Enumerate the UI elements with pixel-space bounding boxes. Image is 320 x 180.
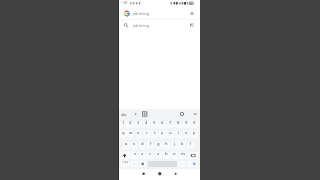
staticText: p bbox=[193, 131, 196, 136]
button[interactable] bbox=[188, 152, 198, 159]
staticText: y bbox=[161, 131, 164, 136]
staticText: m bbox=[181, 152, 185, 157]
staticText: i bbox=[178, 131, 180, 136]
staticText: l bbox=[190, 142, 192, 147]
staticText: 0 bbox=[193, 121, 196, 126]
button[interactable] bbox=[139, 161, 146, 167]
button[interactable]: abc bbox=[121, 110, 133, 118]
button[interactable]: job hiring bbox=[133, 9, 193, 18]
staticText: b bbox=[165, 152, 168, 157]
staticText: r bbox=[146, 131, 148, 136]
staticText: j bbox=[174, 142, 176, 147]
button[interactable]: z bbox=[131, 152, 138, 159]
staticText: o bbox=[185, 131, 188, 136]
staticText: 8 bbox=[177, 121, 180, 126]
staticText: , bbox=[134, 161, 136, 165]
staticText: x bbox=[141, 152, 144, 157]
button[interactable]: a bbox=[123, 142, 130, 149]
staticText: q bbox=[122, 131, 125, 136]
staticText: k bbox=[181, 142, 184, 147]
button[interactable]: r bbox=[143, 131, 150, 138]
button[interactable]: k bbox=[179, 142, 186, 149]
staticText: w bbox=[129, 131, 133, 136]
staticText: . bbox=[181, 161, 183, 165]
button[interactable]: 2 bbox=[127, 121, 134, 128]
button[interactable]: n bbox=[171, 152, 178, 159]
button[interactable]: b bbox=[163, 152, 170, 159]
staticText: d bbox=[141, 142, 144, 147]
staticText: 1:49 bbox=[121, 1, 128, 5]
button[interactable]: d bbox=[139, 142, 146, 149]
staticText: t bbox=[154, 131, 156, 136]
staticText: 9 bbox=[185, 121, 188, 126]
staticText: ?123 bbox=[122, 161, 128, 164]
button[interactable] bbox=[120, 152, 130, 159]
staticText: 5 bbox=[153, 121, 156, 126]
button[interactable]: u bbox=[167, 131, 174, 138]
button[interactable]: l bbox=[187, 142, 194, 149]
button[interactable]: , bbox=[131, 161, 138, 167]
staticText: f bbox=[150, 142, 152, 147]
button[interactable]: m bbox=[179, 152, 186, 159]
button[interactable]: c bbox=[147, 152, 154, 159]
staticText: 4 bbox=[145, 121, 148, 126]
button[interactable]: w bbox=[127, 131, 134, 138]
button[interactable]: job hiring bbox=[133, 21, 193, 30]
button[interactable]: p bbox=[191, 131, 198, 138]
button[interactable]: f bbox=[147, 142, 154, 149]
staticText: s bbox=[133, 142, 136, 147]
button[interactable]: 7 bbox=[167, 121, 174, 128]
staticText: 6 bbox=[161, 121, 164, 126]
staticText: abc bbox=[121, 112, 127, 117]
button[interactable]: 0 bbox=[191, 121, 198, 128]
staticText: a bbox=[125, 142, 128, 147]
button[interactable]: 8 bbox=[175, 121, 182, 128]
button[interactable]: 3 bbox=[135, 121, 142, 128]
staticText: 2 bbox=[129, 121, 132, 126]
button[interactable]: 4 bbox=[143, 121, 150, 128]
staticText: e bbox=[137, 131, 140, 136]
staticText: u bbox=[169, 131, 172, 136]
button[interactable]: y bbox=[159, 131, 166, 138]
button[interactable]: i bbox=[175, 131, 182, 138]
button[interactable]: 1 bbox=[120, 121, 127, 128]
button[interactable]: 5 bbox=[151, 121, 158, 128]
button[interactable]: t bbox=[151, 131, 158, 138]
button[interactable]: o bbox=[183, 131, 190, 138]
button[interactable]: g bbox=[155, 142, 162, 149]
staticText: n bbox=[173, 152, 176, 157]
staticText: v bbox=[157, 152, 160, 157]
button[interactable]: q bbox=[120, 131, 127, 138]
button[interactable]: s bbox=[131, 142, 138, 149]
button[interactable]: e bbox=[135, 131, 142, 138]
staticText: job hiring bbox=[133, 23, 149, 28]
staticText: c bbox=[149, 152, 152, 157]
button[interactable]: . bbox=[178, 161, 185, 167]
button[interactable]: v bbox=[155, 152, 162, 159]
staticText: z bbox=[134, 152, 136, 157]
button[interactable]: h bbox=[163, 142, 170, 149]
button[interactable] bbox=[187, 161, 199, 167]
staticText: h bbox=[165, 142, 168, 147]
button[interactable]: 6 bbox=[159, 121, 166, 128]
staticText: g bbox=[157, 142, 160, 147]
staticText: 3 bbox=[137, 121, 140, 126]
staticText: job hiring bbox=[133, 11, 149, 16]
staticText: 1 bbox=[122, 121, 125, 126]
staticText: 7 bbox=[169, 121, 172, 126]
button[interactable]: 9 bbox=[183, 121, 190, 128]
button[interactable]: x bbox=[139, 152, 146, 159]
button[interactable]: j bbox=[171, 142, 178, 149]
button[interactable]: ?123 bbox=[120, 161, 130, 167]
